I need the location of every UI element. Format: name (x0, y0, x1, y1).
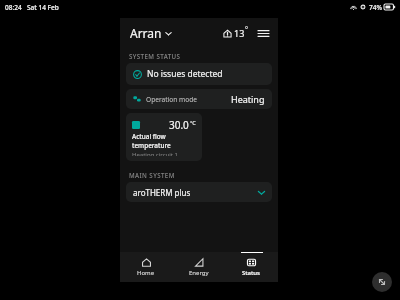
button[interactable]: Operation mode (126, 89, 272, 109)
staticText: 30.0 (169, 118, 189, 132)
staticText: SYSTEM STATUS (129, 52, 181, 60)
staticText: Arran (130, 25, 162, 41)
staticText: 13 (234, 27, 245, 39)
staticText: Heating (231, 93, 265, 105)
staticText: Heating circuit 1 (132, 151, 178, 156)
staticText: Energy (189, 269, 209, 277)
button[interactable]: 30.0 (126, 113, 202, 161)
staticText: Sat 14 Feb (27, 3, 59, 12)
staticText: Status (242, 269, 261, 277)
staticText: Operation mode (146, 95, 198, 104)
staticText: ° (245, 25, 248, 35)
button[interactable]: Arran (128, 23, 174, 43)
staticText: aroTHERM plus (133, 187, 191, 198)
staticText: temperature (132, 141, 171, 150)
button[interactable]: Menu (255, 25, 271, 41)
staticText: 74% (369, 3, 382, 12)
staticText: °C (190, 119, 196, 126)
staticText: 08:24 (5, 3, 22, 12)
staticText: No issues detected (147, 68, 223, 80)
staticText: Actual flow (132, 132, 166, 141)
button[interactable]: Energy (172, 252, 225, 282)
button[interactable]: aroTHERM plus (126, 182, 272, 202)
button[interactable]: No issues detected (126, 63, 272, 85)
button[interactable]: Home (120, 252, 172, 282)
staticText: Home (137, 269, 155, 277)
button[interactable]: Status (225, 252, 278, 282)
button[interactable]: Outdoor temperature (221, 25, 250, 41)
button[interactable]: Resize window (372, 272, 392, 292)
staticText: MAIN SYSTEM (129, 171, 175, 179)
